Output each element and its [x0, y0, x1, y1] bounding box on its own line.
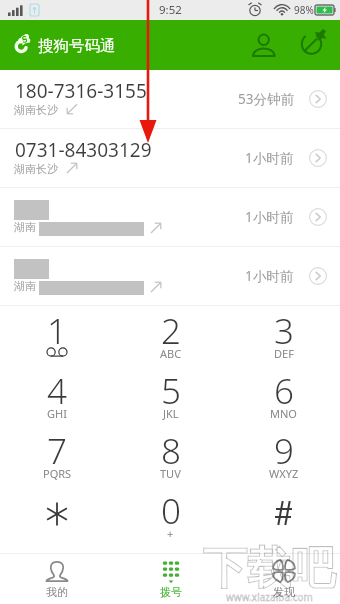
staticText: 湖南: [14, 220, 36, 234]
staticText: 0731-84303129: [15, 137, 152, 163]
staticText: 3: [274, 307, 294, 355]
staticText: 1小时前: [245, 267, 294, 285]
button[interactable]: 6: [227, 373, 340, 433]
button[interactable]: 我的: [0, 553, 114, 604]
button[interactable]: 1: [0, 313, 114, 373]
button[interactable]: 发现: [227, 553, 340, 604]
button[interactable]: 8: [114, 433, 227, 493]
staticText: 我的: [46, 585, 68, 599]
staticText: 5: [161, 367, 181, 415]
staticText: 53分钟前: [238, 90, 294, 108]
button[interactable]: Discover: [296, 29, 328, 61]
button[interactable]: 湖南: [0, 247, 340, 305]
staticText: 拨号: [160, 585, 182, 599]
staticText: JKL: [163, 406, 179, 421]
staticText: GHI: [47, 406, 67, 421]
button[interactable]: 9: [227, 433, 340, 493]
staticText: 8: [161, 427, 181, 475]
staticText: DEF: [274, 346, 294, 361]
staticText: 98%: [294, 3, 314, 17]
staticText: 1: [47, 307, 67, 355]
staticText: 湖南: [14, 279, 36, 293]
staticText: 湖南长沙: [14, 162, 58, 176]
button[interactable]: 180-7316-3155: [0, 70, 340, 128]
staticText: PQRS: [43, 466, 72, 481]
staticText: +: [167, 526, 174, 541]
staticText: ABC: [160, 346, 182, 361]
button[interactable]: Contacts: [248, 29, 280, 61]
button[interactable]: 3: [227, 313, 340, 373]
button[interactable]: 4: [0, 373, 114, 433]
staticText: 9:52: [159, 2, 182, 18]
staticText: 湖南长沙: [14, 103, 58, 117]
button[interactable]: [0, 493, 114, 553]
button[interactable]: 拨号: [114, 553, 227, 604]
staticText: 发现: [273, 585, 295, 599]
staticText: 9: [274, 427, 294, 475]
staticText: 搜狗号码通: [38, 36, 116, 56]
staticText: 2: [161, 307, 181, 355]
staticText: 1小时前: [245, 208, 294, 226]
staticText: 180-7316-3155: [15, 78, 147, 104]
staticText: WXYZ: [269, 466, 299, 481]
staticText: 下载吧: [203, 541, 335, 596]
staticText: www.xiazaiba.com: [226, 590, 313, 604]
staticText: 7: [47, 427, 67, 475]
button[interactable]: 湖南: [0, 188, 340, 246]
button[interactable]: 0731-84303129: [0, 129, 340, 187]
button[interactable]: 5: [114, 373, 227, 433]
staticText: 1小时前: [245, 149, 294, 167]
button[interactable]: 2: [114, 313, 227, 373]
staticText: 6: [274, 367, 294, 415]
staticText: MNO: [270, 406, 297, 421]
staticText: 4: [47, 367, 67, 415]
button[interactable]: 7: [0, 433, 114, 493]
staticText: 0: [161, 487, 181, 535]
staticText: TUV: [160, 466, 181, 481]
button[interactable]: 0: [114, 493, 227, 553]
button[interactable]: [227, 493, 340, 553]
